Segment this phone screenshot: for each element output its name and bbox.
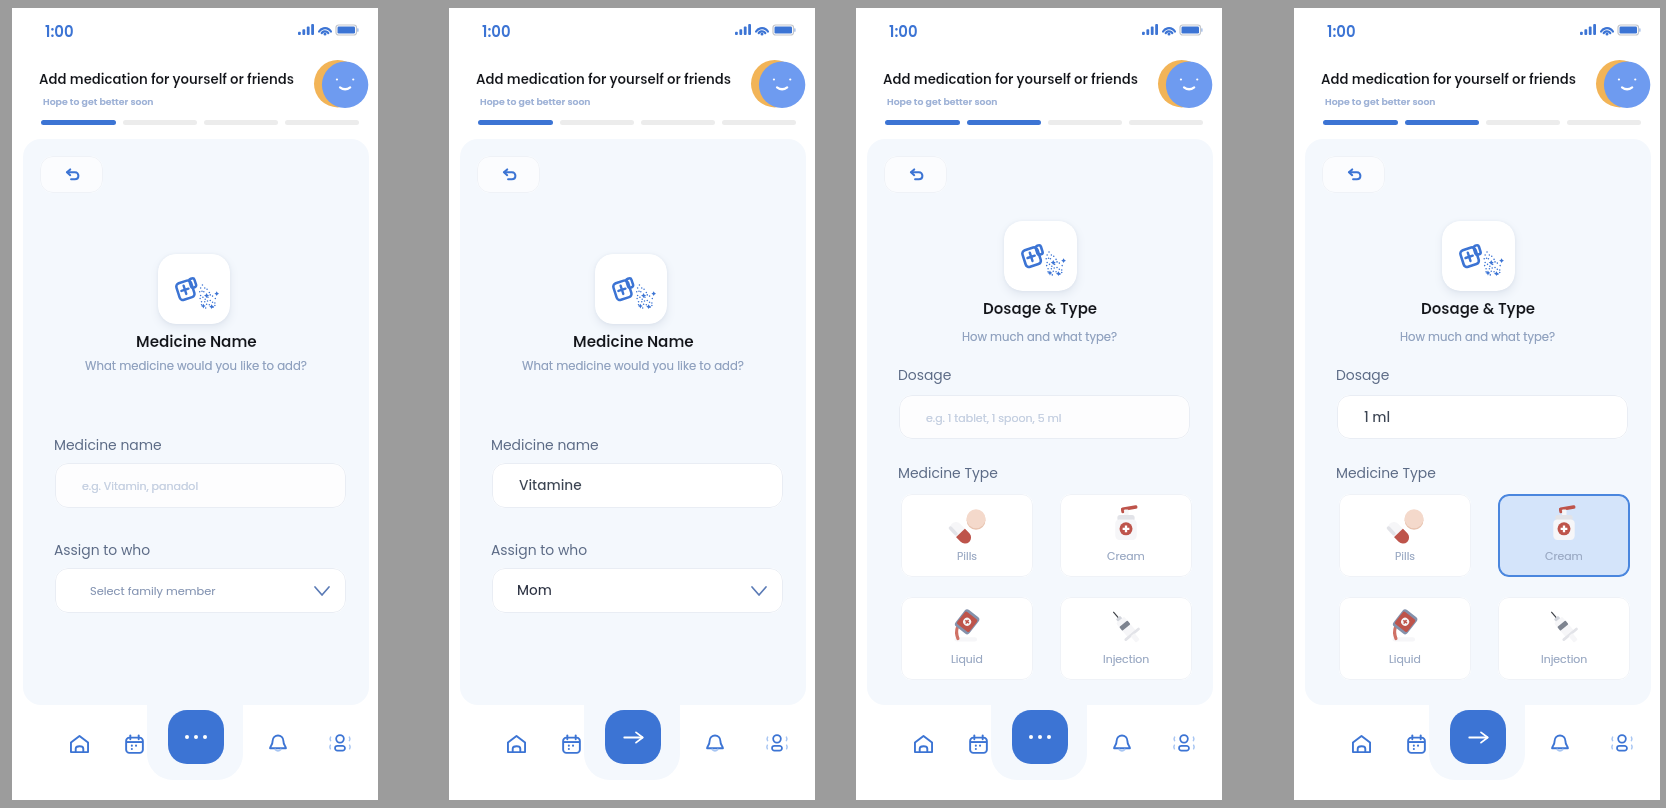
staticText: Dosage [898,365,952,384]
button[interactable]: Back [477,156,540,193]
button[interactable]: Back [40,156,103,193]
staticText: 1:00 [482,21,511,42]
staticText: How much and what type? [962,329,1118,345]
button[interactable]: Next [1450,710,1506,764]
staticText: Vitamine [519,476,582,495]
button[interactable]: Mom [492,568,783,613]
button[interactable]: Profile [1600,721,1644,765]
button[interactable]: Next [605,710,661,764]
staticText: What medicine would you like to add? [522,358,744,374]
staticText: Dosage & Type [1421,298,1536,319]
staticText: Medicine name [491,435,599,454]
button[interactable]: e.g. 1 tablet, 1 spoon, 5 ml [899,395,1190,439]
button[interactable]: More options [168,710,224,764]
button[interactable]: Pills [901,494,1033,577]
button[interactable]: 1 ml [1337,395,1628,439]
staticText: Hope to get better soon [43,95,154,108]
staticText: Assign to who [491,540,588,559]
staticText: Select family member [90,583,216,599]
staticText: 1:00 [45,21,74,42]
staticText: Medicine name [54,435,162,454]
button[interactable]: Liquid [1339,597,1471,680]
button[interactable]: Calendar [956,722,1000,766]
button[interactable]: Back [884,156,947,193]
staticText: Injection [1541,652,1588,667]
button[interactable]: Home [494,722,538,766]
staticText: Medicine Name [573,331,694,352]
button[interactable]: Home [57,722,101,766]
staticText: Hope to get better soon [887,95,998,108]
button[interactable]: More options [1012,710,1068,764]
button[interactable]: Notifications [693,721,737,765]
button[interactable]: Select family member [55,568,346,613]
button[interactable]: Home [901,722,945,766]
button[interactable]: Profile [318,721,362,765]
staticText: 1:00 [1327,21,1356,42]
staticText: Pills [957,549,978,564]
staticText: Medicine Type [1336,463,1436,482]
button[interactable]: Cream [1060,494,1192,577]
staticText: Dosage [1336,365,1390,384]
staticText: Hope to get better soon [1325,95,1436,108]
button[interactable]: Notifications [256,721,300,765]
button[interactable]: Calendar [549,722,593,766]
button[interactable]: Cream [1498,494,1630,577]
button[interactable]: Liquid [901,597,1033,680]
staticText: Assign to who [54,540,151,559]
button[interactable]: Vitamine [492,463,783,508]
button[interactable]: Profile [1162,721,1206,765]
staticText: Add medication for yourself or friends [39,70,295,89]
button[interactable]: Notifications [1538,721,1582,765]
button[interactable]: e.g. Vitamin, panadol [55,463,346,508]
staticText: What medicine would you like to add? [85,358,307,374]
staticText: Dosage & Type [983,298,1098,319]
staticText: Add medication for yourself or friends [1321,70,1577,89]
staticText: e.g. Vitamin, panadol [82,478,199,493]
button[interactable]: Home [1339,722,1383,766]
staticText: Liquid [1389,652,1421,667]
staticText: Medicine Type [898,463,998,482]
staticText: Pills [1395,549,1416,564]
staticText: Liquid [951,652,983,667]
staticText: Medicine Name [136,331,257,352]
button[interactable]: Pills [1339,494,1471,577]
staticText: e.g. 1 tablet, 1 spoon, 5 ml [926,410,1062,425]
button[interactable]: Back [1322,156,1385,193]
staticText: How much and what type? [1400,329,1556,345]
staticText: Mom [517,581,552,600]
button[interactable]: Calendar [112,722,156,766]
button[interactable]: Profile [755,721,799,765]
button[interactable]: Calendar [1394,722,1438,766]
button[interactable]: Injection [1498,597,1630,680]
button[interactable]: Notifications [1100,721,1144,765]
staticText: 1 ml [1364,408,1391,427]
staticText: 1:00 [889,21,918,42]
button[interactable]: Injection [1060,597,1192,680]
staticText: Add medication for yourself or friends [476,70,732,89]
staticText: Cream [1545,549,1583,564]
staticText: Hope to get better soon [480,95,591,108]
staticText: Cream [1107,549,1145,564]
staticText: Injection [1103,652,1150,667]
staticText: Add medication for yourself or friends [883,70,1139,89]
